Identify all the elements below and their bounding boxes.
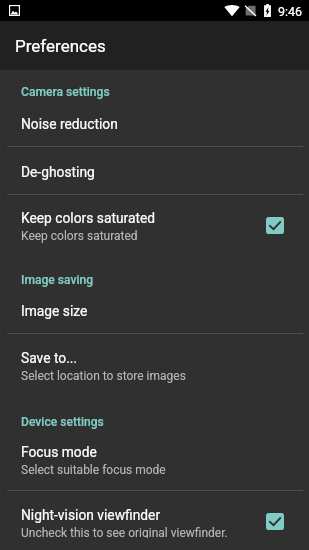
staticText: Select location to store images	[21, 369, 186, 383]
button[interactable]: Noise reduction	[0, 99, 309, 146]
button[interactable]: Image size	[0, 287, 309, 333]
staticText: 9:46	[278, 4, 303, 19]
staticText: Image size	[21, 303, 88, 319]
button[interactable]: Toggle Night-vision viewfinder	[266, 513, 284, 530]
staticText: Select suitable focus mode	[21, 463, 166, 477]
staticText: Keep colors saturated	[21, 229, 138, 243]
button[interactable]: Focus mode	[0, 429, 309, 490]
button[interactable]: De-ghosting	[0, 147, 309, 194]
staticText: Device settings	[21, 415, 104, 429]
staticText: Image saving	[21, 273, 94, 287]
staticText: Uncheck this to see original viewfinder.	[21, 526, 228, 538]
staticText: Keep colors saturated	[21, 210, 156, 226]
staticText: Save to...	[21, 350, 78, 366]
button[interactable]: Keep colors saturated	[0, 195, 309, 256]
button[interactable]: Night-vision viewfinder	[0, 491, 309, 550]
staticText: Night-vision viewfinder	[21, 507, 161, 523]
staticText: Focus mode	[21, 444, 97, 460]
button[interactable]: Save to...	[0, 334, 309, 397]
staticText: De-ghosting	[21, 164, 95, 180]
staticText: Camera settings	[21, 85, 110, 99]
staticText: Noise reduction	[21, 116, 118, 132]
staticText: Preferences	[15, 36, 106, 56]
button[interactable]: Toggle Keep colors saturated	[266, 217, 284, 234]
